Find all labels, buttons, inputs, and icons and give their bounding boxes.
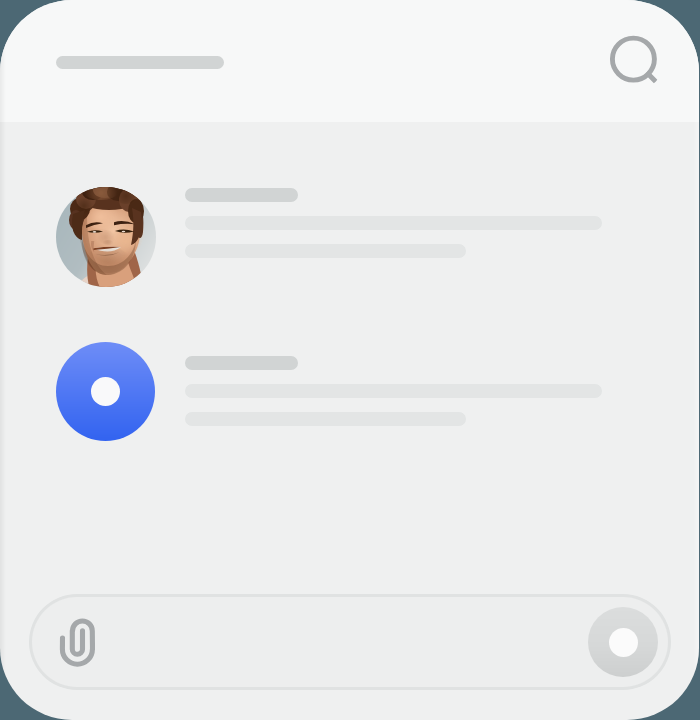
button[interactable] [56,342,155,441]
button[interactable]: Attach file [32,597,668,687]
other: Attach file [58,616,98,668]
button[interactable] [56,187,156,287]
button[interactable]: Search [601,27,665,91]
button[interactable]: Send [588,607,658,677]
